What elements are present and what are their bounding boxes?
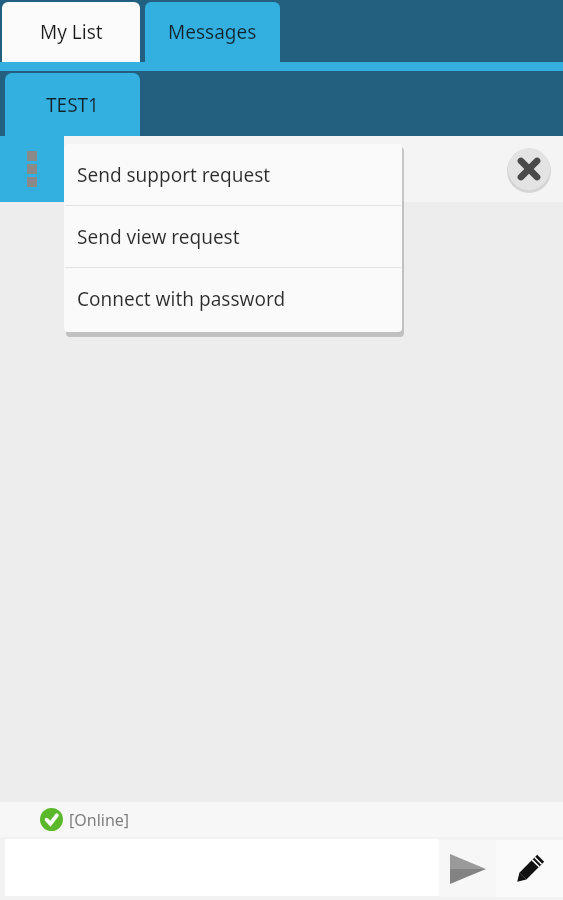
button[interactable]: Send	[439, 840, 496, 897]
staticText: My List	[40, 19, 103, 45]
button[interactable]: Close	[507, 147, 551, 191]
staticText: Send support request	[77, 162, 271, 188]
button[interactable]: Connect with password	[64, 268, 402, 329]
button[interactable]: My List	[2, 2, 140, 62]
button[interactable]: Send view request	[64, 206, 402, 267]
staticText: Connect with password	[77, 286, 286, 312]
button[interactable]: More options	[0, 136, 64, 202]
staticText: [Online]	[69, 809, 130, 831]
button[interactable]: Send support request	[64, 144, 402, 205]
staticText: Send view request	[77, 224, 240, 250]
staticText: Messages	[168, 19, 257, 45]
button[interactable]: TEST1	[5, 73, 140, 136]
staticText: TEST1	[46, 92, 99, 118]
button[interactable]: Messages	[145, 2, 280, 62]
button[interactable]: Compose	[496, 840, 563, 897]
